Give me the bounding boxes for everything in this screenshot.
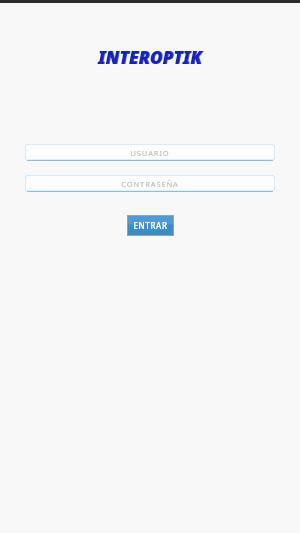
button[interactable]: USUARIO: [25, 144, 275, 161]
staticText: CONTRASEÑA: [121, 179, 179, 189]
staticText: ENTRAR: [133, 220, 168, 231]
button[interactable]: ENTRAR: [127, 215, 174, 236]
button[interactable]: CONTRASEÑA: [25, 175, 275, 192]
staticText: USUARIO: [130, 148, 170, 158]
staticText: INTEROPTIK: [98, 46, 202, 69]
staticText: INTEROPTIK: [99, 46, 203, 69]
